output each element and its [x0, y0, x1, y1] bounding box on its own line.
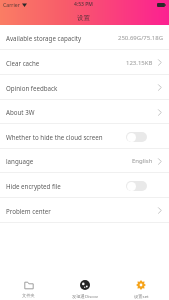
button[interactable]: Opinion feedback	[0, 75, 169, 100]
staticText: Clear cache	[6, 59, 40, 67]
button[interactable]: Hide encrypted file	[0, 173, 169, 198]
staticText: Carrier	[3, 1, 20, 8]
staticText: 设置set	[134, 293, 149, 299]
other: 文件夹	[24, 280, 34, 290]
staticText: 发现通Discov	[72, 293, 98, 299]
staticText: Whether to hide the cloud screen	[6, 133, 103, 141]
staticText: 250.69G/75.18G	[118, 34, 164, 42]
button[interactable]: Clear cache	[0, 50, 169, 75]
other: 设置set	[136, 280, 146, 290]
other: 发现通Discov	[80, 280, 90, 290]
button[interactable]: 文件夹	[0, 278, 57, 300]
button[interactable]: Problem center	[0, 198, 169, 223]
button[interactable]: About 3W	[0, 100, 169, 124]
button[interactable]: language	[0, 149, 169, 173]
button[interactable]: 发现通Discov	[57, 278, 113, 300]
staticText: About 3W	[6, 108, 35, 116]
staticText: Opinion feedback	[6, 84, 58, 92]
button[interactable]: 设置set	[113, 278, 169, 300]
button[interactable]: Available storage capacity	[0, 25, 169, 50]
staticText: 设置	[77, 14, 90, 22]
button[interactable]: Whether to hide the cloud screen	[0, 124, 169, 149]
staticText: English	[132, 157, 153, 165]
staticText: 文件夹	[22, 293, 35, 298]
staticText: 123.15KB	[126, 59, 153, 67]
staticText: Hide encrypted file	[6, 182, 61, 190]
staticText: 4:53 PM	[74, 1, 93, 8]
staticText: language	[6, 157, 34, 165]
staticText: Problem center	[6, 207, 51, 215]
staticText: Available storage capacity	[6, 34, 82, 42]
